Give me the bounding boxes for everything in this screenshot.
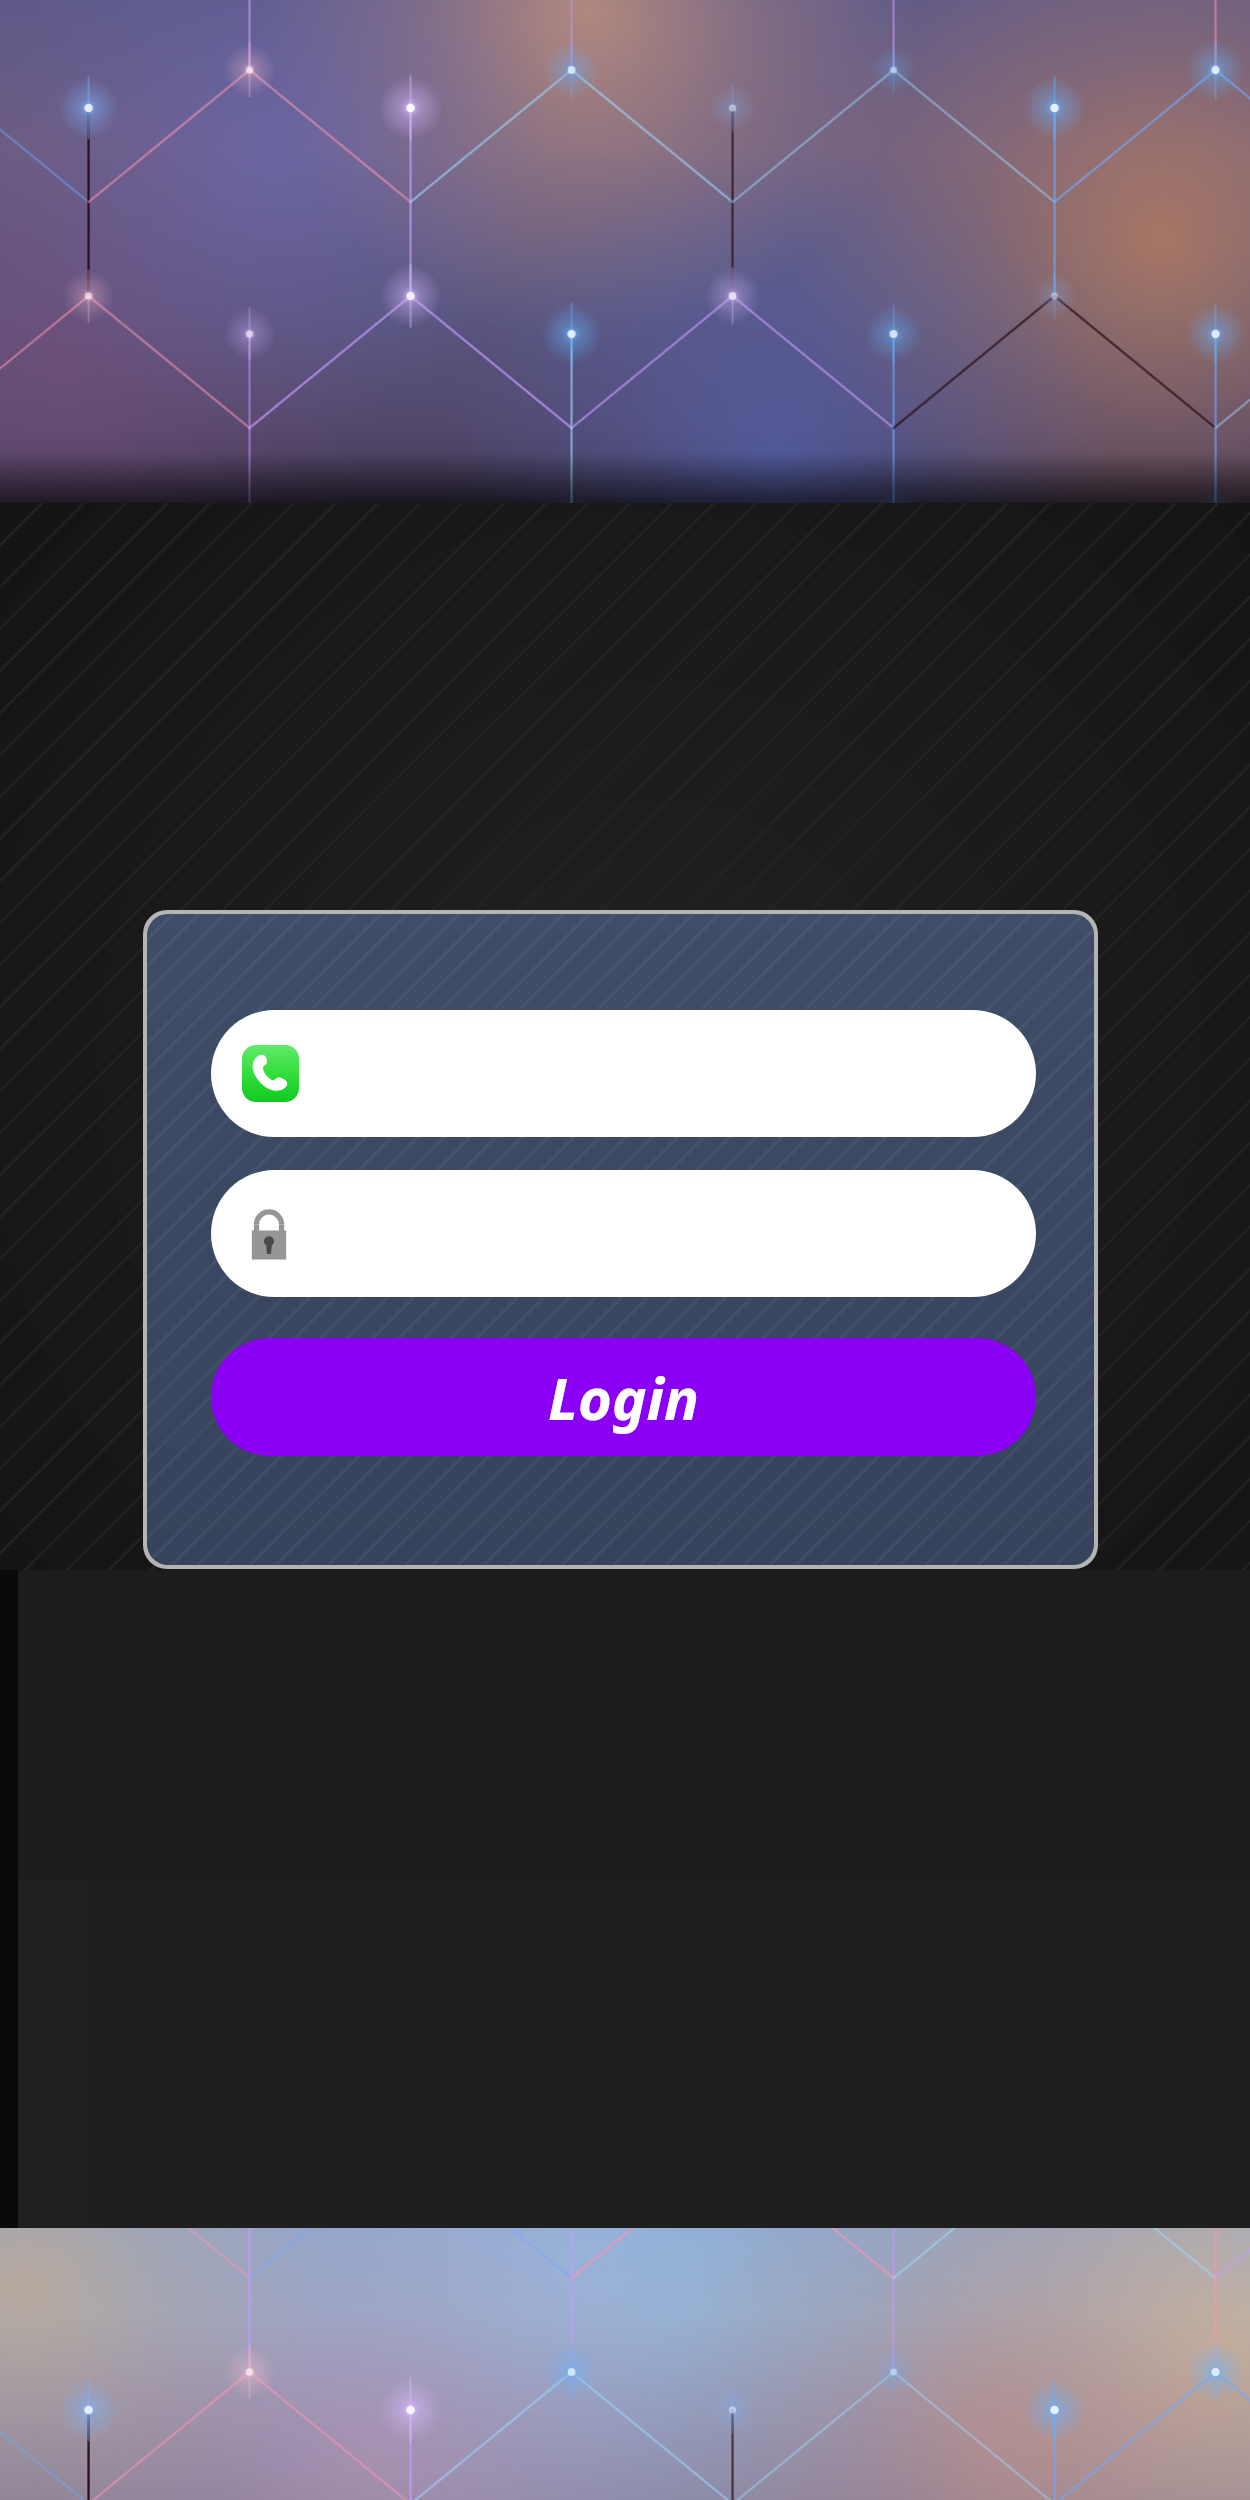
- button[interactable]: Password: [211, 1170, 1036, 1297]
- other: Password: [247, 1205, 291, 1263]
- button[interactable]: Login: [211, 1338, 1036, 1456]
- staticText: Login: [548, 1358, 699, 1437]
- other: Phone number: [242, 1045, 299, 1102]
- button[interactable]: Phone number: [211, 1010, 1036, 1137]
